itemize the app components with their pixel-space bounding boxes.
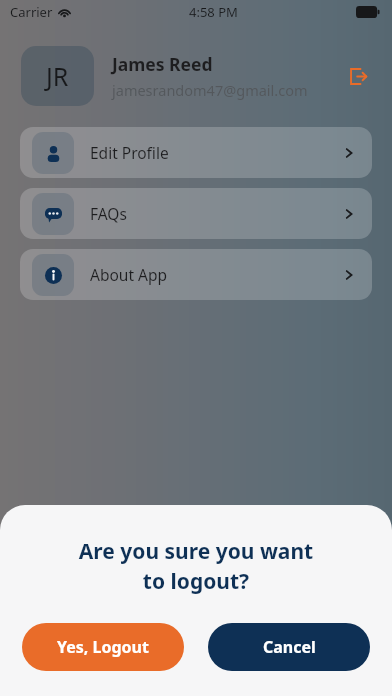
staticText: Yes, Logout	[57, 636, 149, 658]
button[interactable]: JR	[21, 46, 94, 106]
button[interactable]: Logout	[340, 59, 374, 93]
button[interactable]: Edit Profile	[20, 127, 372, 178]
staticText: jamesrandom47@gmail.com	[112, 80, 308, 100]
staticText: About App	[90, 264, 342, 285]
button[interactable]: Yes, Logout	[22, 623, 184, 671]
staticText: Are you sure you want to logout?	[0, 537, 392, 595]
staticText: Carrier	[10, 3, 53, 21]
staticText: 4:58 PM	[189, 3, 238, 21]
staticText: Edit Profile	[90, 142, 342, 163]
button[interactable]: FAQs	[20, 188, 372, 239]
staticText: JR	[46, 59, 69, 93]
staticText: FAQs	[90, 203, 342, 224]
button[interactable]: About App	[20, 249, 372, 300]
staticText: Cancel	[263, 636, 316, 658]
staticText: James Reed	[112, 52, 213, 76]
button[interactable]: Cancel	[208, 623, 370, 671]
